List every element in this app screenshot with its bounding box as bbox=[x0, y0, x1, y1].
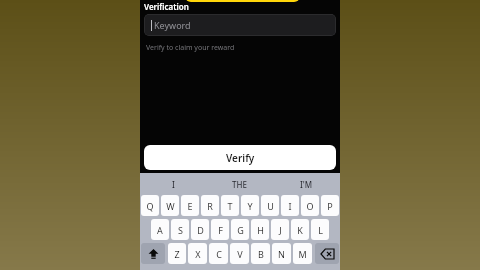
staticText: G bbox=[237, 224, 244, 236]
staticText: Verify to claim your reward bbox=[146, 43, 235, 53]
button[interactable]: B bbox=[251, 243, 270, 264]
button[interactable]: T bbox=[221, 195, 239, 216]
staticText: S bbox=[178, 224, 183, 236]
staticText: B bbox=[258, 248, 264, 260]
button[interactable]: D bbox=[191, 219, 209, 240]
button[interactable]: Y bbox=[241, 195, 259, 216]
staticText: X bbox=[195, 248, 201, 260]
button[interactable]: I'M bbox=[273, 173, 340, 195]
button[interactable]: C bbox=[209, 243, 228, 264]
staticText: K bbox=[297, 224, 303, 236]
button[interactable]: K bbox=[291, 219, 309, 240]
button[interactable]: Verify bbox=[144, 145, 336, 170]
button[interactable]: G bbox=[231, 219, 249, 240]
staticText: Keyword bbox=[154, 19, 191, 31]
staticText: Verification bbox=[144, 1, 189, 12]
staticText: Y bbox=[247, 200, 253, 212]
button[interactable]: S bbox=[171, 219, 189, 240]
button[interactable]: F bbox=[211, 219, 229, 240]
button[interactable]: I bbox=[140, 173, 206, 195]
button[interactable]: H bbox=[251, 219, 269, 240]
button[interactable]: A bbox=[151, 219, 169, 240]
button[interactable]: V bbox=[230, 243, 249, 264]
button[interactable]: N bbox=[272, 243, 291, 264]
button[interactable]: J bbox=[271, 219, 289, 240]
button[interactable]: THE bbox=[206, 173, 273, 195]
staticText: L bbox=[318, 224, 323, 236]
staticText: Z bbox=[174, 248, 180, 260]
staticText: T bbox=[227, 200, 233, 212]
button[interactable]: W bbox=[161, 195, 179, 216]
staticText: J bbox=[279, 224, 282, 236]
button[interactable]: Backspace bbox=[315, 243, 339, 264]
button[interactable]: Z bbox=[168, 243, 186, 264]
staticText: Verify bbox=[226, 151, 255, 165]
button[interactable]: Shift bbox=[141, 243, 165, 264]
button[interactable]: GET VERIFIED bbox=[185, 0, 300, 2]
staticText: U bbox=[267, 200, 274, 212]
staticText: N bbox=[278, 248, 285, 260]
staticText: O bbox=[306, 200, 314, 212]
staticText: I bbox=[172, 179, 175, 190]
staticText: Q bbox=[146, 200, 154, 212]
staticText: V bbox=[237, 248, 243, 260]
staticText: I'M bbox=[300, 179, 313, 190]
staticText: I bbox=[288, 200, 292, 212]
button[interactable]: E bbox=[181, 195, 199, 216]
staticText: E bbox=[187, 200, 193, 212]
button[interactable]: Q bbox=[141, 195, 159, 216]
staticText: A bbox=[157, 224, 163, 236]
button[interactable]: Keyword bbox=[144, 14, 336, 36]
button[interactable]: L bbox=[311, 219, 329, 240]
button[interactable]: O bbox=[301, 195, 319, 216]
staticText: M bbox=[298, 248, 307, 260]
button[interactable]: I bbox=[281, 195, 299, 216]
button[interactable]: P bbox=[321, 195, 339, 216]
staticText: F bbox=[218, 224, 223, 236]
button[interactable]: M bbox=[293, 243, 312, 264]
staticText: P bbox=[327, 200, 333, 212]
button[interactable]: U bbox=[261, 195, 279, 216]
staticText: W bbox=[166, 200, 175, 212]
staticText: H bbox=[257, 224, 264, 236]
button[interactable]: R bbox=[201, 195, 219, 216]
staticText: D bbox=[197, 224, 204, 236]
staticText: C bbox=[216, 248, 222, 260]
staticText: THE bbox=[232, 179, 247, 190]
button[interactable]: X bbox=[188, 243, 207, 264]
staticText: R bbox=[207, 200, 213, 212]
